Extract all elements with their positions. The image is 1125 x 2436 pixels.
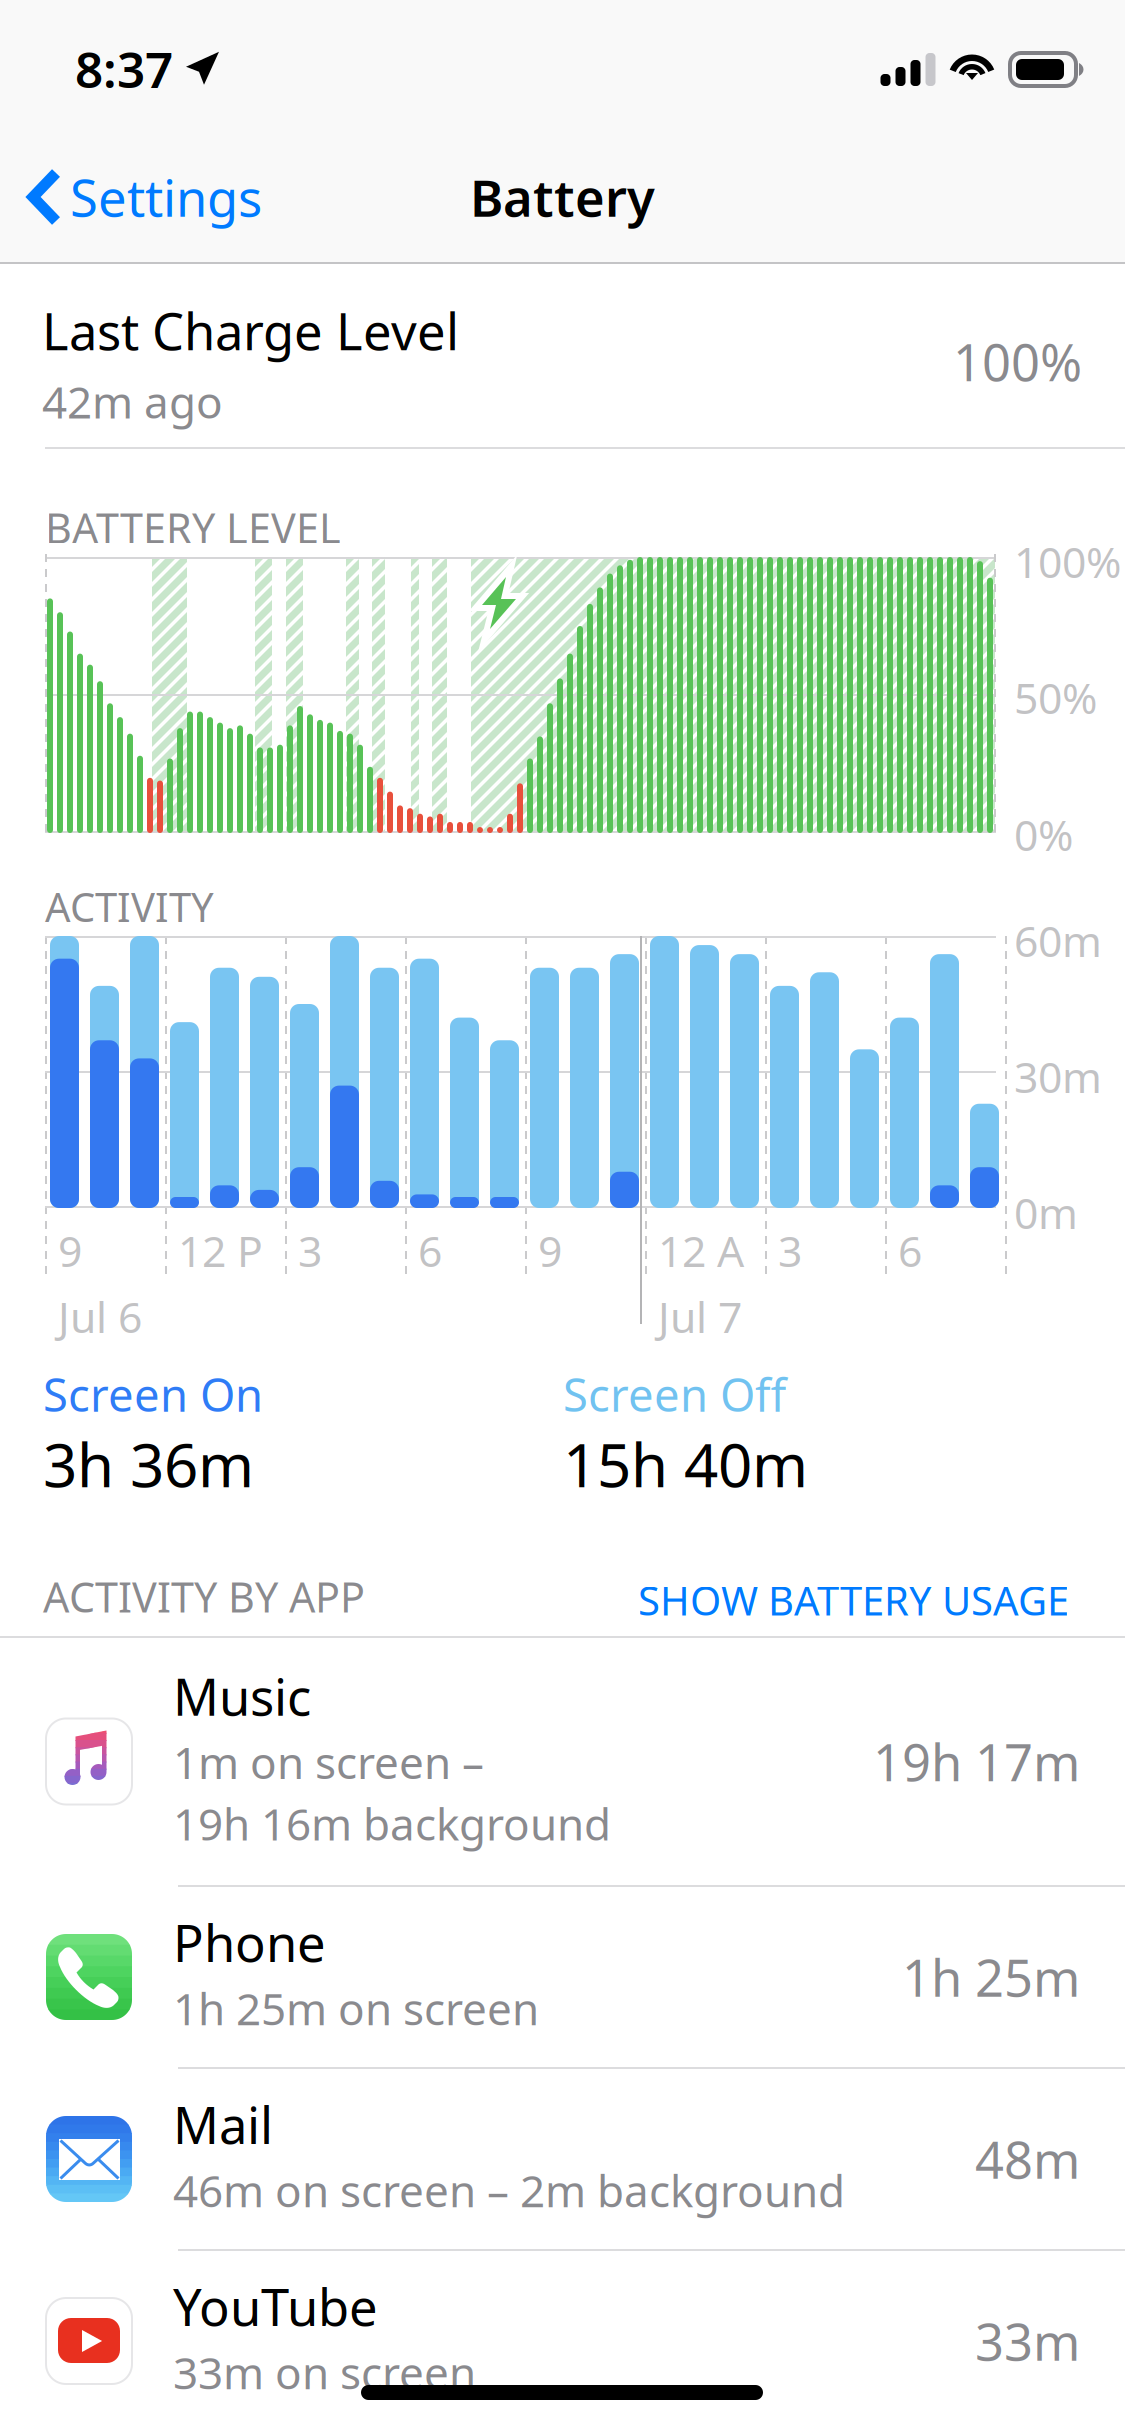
button[interactable]: Settings [0,132,282,262]
staticText: 1h 25m [902,1943,1080,2011]
staticText: SHOW BATTERY USAGE [638,1573,1069,1626]
staticText: 60m [1014,912,1102,969]
staticText: 1h 25m on screen [173,1979,539,2037]
staticText: YouTube [173,2273,378,2340]
staticText: Battery [470,163,655,231]
staticText: 50% [1014,669,1097,726]
staticText: Jul 6 [58,1288,142,1345]
staticText: Screen Off [563,1364,786,1424]
staticText: Phone [173,1909,326,1976]
staticText: 30m [1014,1048,1102,1105]
staticText: 19h 16m background [173,1794,611,1852]
button[interactable]: Music [0,1638,1125,1885]
staticText: 3 [298,1222,322,1279]
staticText: 100% [953,328,1082,395]
staticText: 9 [58,1222,82,1279]
staticText: 12 A [658,1222,744,1279]
staticText: Mail [173,2091,273,2158]
staticText: 0m [1014,1184,1078,1241]
button[interactable]: Mail [0,2069,1125,2249]
staticText: BATTERY LEVEL [45,500,341,555]
button[interactable]: SHOW BATTERY USAGE [629,1570,1069,1630]
staticText: 3 [778,1222,802,1279]
staticText: 33m [975,2307,1080,2375]
staticText: 48m [975,2125,1080,2193]
staticText: 8:37 [75,36,173,101]
staticText: 6 [898,1222,922,1279]
staticText: 3h 36m [43,1424,254,1504]
staticText: Last Charge Level [42,297,459,364]
staticText: 42m ago [42,372,223,431]
staticText: Jul 7 [658,1288,742,1345]
staticText: 46m on screen – 2m background [173,2161,845,2219]
staticText: 33m on screen [173,2343,476,2401]
staticText: ACTIVITY [45,880,214,933]
button[interactable]: YouTube [0,2251,1125,2431]
button[interactable]: Phone [0,1887,1125,2067]
staticText: 6 [418,1222,442,1279]
staticText: 1m on screen – [173,1733,484,1791]
staticText: ACTIVITY BY APP [43,1569,365,1624]
staticText: 12 P [178,1222,263,1279]
staticText: Music [173,1662,311,1730]
staticText: Screen On [43,1364,263,1424]
staticText: 0% [1014,806,1073,863]
staticText: 100% [1014,533,1121,590]
staticText: 9 [538,1222,562,1279]
staticText: 15h 40m [563,1424,808,1504]
staticText: 19h 17m [873,1728,1080,1795]
staticText: Settings [70,163,262,231]
